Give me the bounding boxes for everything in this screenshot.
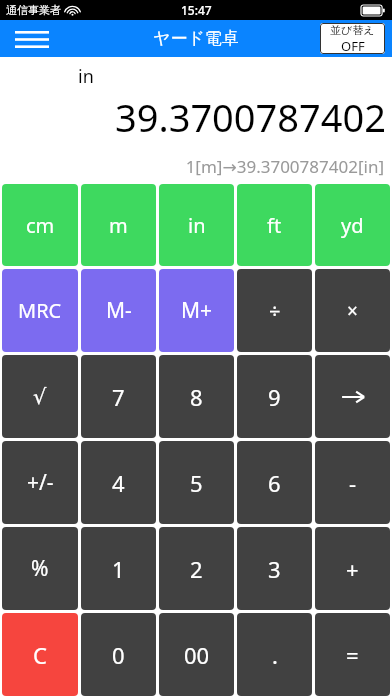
staticText: C	[33, 640, 47, 670]
staticText: MRC	[18, 297, 62, 324]
button[interactable]: 00	[159, 613, 234, 696]
button[interactable]: 0	[81, 613, 156, 696]
button[interactable]: ft	[237, 184, 312, 266]
button[interactable]: +/-	[2, 441, 78, 524]
button[interactable]: 9	[237, 355, 312, 438]
button[interactable]: 4	[81, 441, 156, 524]
staticText: ×	[347, 298, 358, 324]
staticText: yd	[341, 212, 364, 239]
button[interactable]: C	[2, 613, 78, 696]
staticText: in	[188, 212, 206, 239]
staticText: ÷	[269, 297, 281, 324]
button[interactable]: 3	[237, 527, 312, 610]
staticText: 00	[184, 640, 210, 670]
button[interactable]: ÷	[237, 269, 312, 352]
staticText: 8	[190, 382, 203, 412]
button[interactable]: m	[81, 184, 156, 266]
button[interactable]: Delete	[315, 355, 390, 438]
staticText: 3	[268, 554, 281, 584]
button[interactable]: 7	[81, 355, 156, 438]
button[interactable]: MRC	[2, 269, 78, 352]
staticText: -	[349, 468, 357, 498]
staticText: ヤード電卓	[153, 28, 239, 49]
staticText: 通信事業者	[6, 3, 61, 17]
button[interactable]: +	[315, 527, 390, 610]
staticText: 15:47	[181, 2, 212, 18]
staticText: M+	[181, 296, 213, 325]
button[interactable]: %	[2, 527, 78, 610]
staticText: +/-	[27, 468, 54, 497]
button[interactable]: 8	[159, 355, 234, 438]
staticText: 7	[112, 382, 125, 412]
button[interactable]: 2	[159, 527, 234, 610]
button[interactable]: 6	[237, 441, 312, 524]
staticText: 39.3700787402	[0, 91, 386, 143]
button[interactable]: M-	[81, 269, 156, 352]
staticText: 4	[112, 468, 125, 498]
staticText: 0	[112, 640, 125, 670]
button[interactable]: in	[159, 184, 234, 266]
button[interactable]: 並び替え	[320, 23, 385, 54]
staticText: 9	[268, 382, 281, 412]
staticText: 1	[112, 554, 125, 584]
button[interactable]: ×	[315, 269, 390, 352]
button[interactable]: 1	[81, 527, 156, 610]
staticText: .	[272, 640, 278, 670]
staticText: √	[33, 385, 47, 409]
staticText: 6	[268, 468, 281, 498]
staticText: in	[78, 64, 94, 89]
staticText: m	[109, 212, 128, 239]
staticText: 5	[190, 468, 203, 498]
button[interactable]: M+	[159, 269, 234, 352]
button[interactable]: =	[315, 613, 390, 696]
staticText: M-	[106, 296, 132, 325]
staticText: 1[m]→39.3700787402[in]	[0, 155, 384, 178]
button[interactable]: Menu	[10, 22, 54, 56]
button[interactable]: -	[315, 441, 390, 524]
button[interactable]: .	[237, 613, 312, 696]
staticText: ft	[267, 212, 282, 239]
staticText: cm	[26, 212, 55, 239]
button[interactable]: cm	[2, 184, 78, 266]
staticText: 2	[190, 554, 203, 584]
button[interactable]: yd	[315, 184, 390, 266]
button[interactable]: √	[2, 355, 78, 438]
staticText: +	[346, 554, 359, 584]
staticText: OFF	[341, 37, 365, 54]
staticText: 並び替え	[330, 23, 375, 37]
button[interactable]: 5	[159, 441, 234, 524]
staticText: =	[346, 640, 359, 670]
staticText: %	[31, 554, 49, 583]
